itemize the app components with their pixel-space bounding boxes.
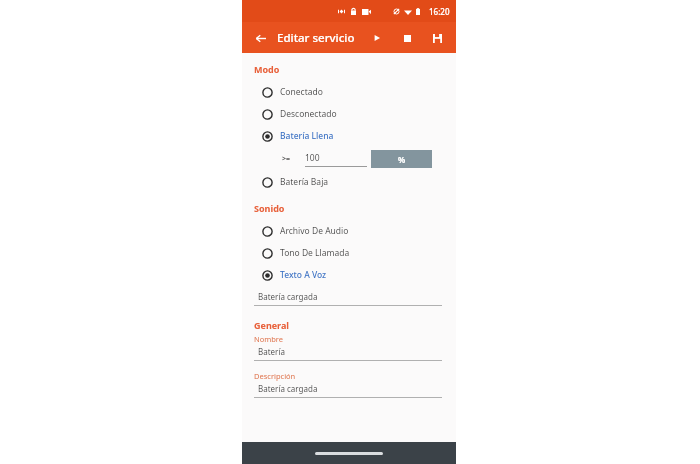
staticText: Desconectado [280, 108, 337, 120]
button[interactable]: % [371, 150, 432, 168]
button[interactable]: Tono De Llamada [254, 242, 442, 264]
button[interactable]: Archivo De Audio [254, 220, 442, 242]
staticText: Batería Baja [280, 176, 329, 188]
staticText: 100 [305, 152, 320, 164]
staticText: Batería cargada [258, 383, 318, 394]
staticText: Batería [258, 346, 285, 357]
staticText: Batería Llena [280, 130, 334, 142]
staticText: Archivo De Audio [280, 225, 349, 237]
button[interactable]: Stop [396, 27, 418, 49]
staticText: Batería cargada [258, 291, 318, 302]
button[interactable]: Play [366, 27, 388, 49]
staticText: General [254, 319, 290, 331]
staticText: Descripción [254, 371, 296, 381]
staticText: Nombre [254, 334, 284, 344]
staticText: >= [282, 154, 291, 164]
staticText: 16:20 [429, 6, 450, 17]
staticText: Editar servicio [277, 30, 355, 46]
staticText: % [398, 154, 406, 165]
staticText: Modo [254, 63, 280, 75]
staticText: Tono De Llamada [280, 247, 350, 259]
button[interactable]: Back [250, 28, 270, 48]
button[interactable]: Desconectado [254, 103, 442, 125]
button[interactable]: Texto A Voz [254, 264, 442, 286]
staticText: Conectado [280, 86, 323, 98]
button[interactable]: Conectado [254, 81, 442, 103]
button[interactable]: Batería Llena [254, 125, 442, 147]
staticText: Texto A Voz [280, 269, 327, 281]
button[interactable]: Batería Baja [254, 171, 442, 193]
staticText: Sonido [254, 202, 285, 214]
button[interactable]: Save [426, 27, 448, 49]
